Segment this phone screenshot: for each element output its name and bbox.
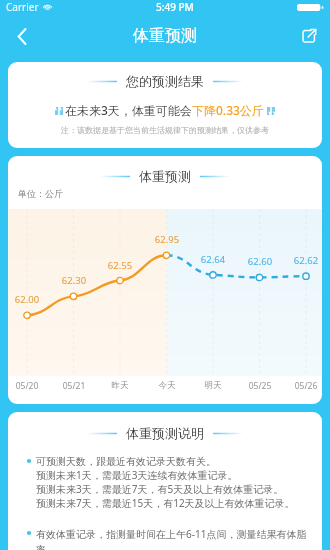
staticText: 62.62 xyxy=(292,254,320,267)
staticText: 体重预测 xyxy=(139,168,191,184)
staticText: 5:49 PM xyxy=(156,0,194,14)
staticText: 预测未来3天，需最近7天，有5天及以上有效体重记录。 xyxy=(36,482,284,496)
staticText: 体重预测说明 xyxy=(126,425,204,441)
staticText: 体重预测 xyxy=(0,26,330,46)
staticText: 明天 xyxy=(197,380,229,391)
staticText: 昨天 xyxy=(104,380,136,391)
staticText: 05/25 xyxy=(244,380,276,392)
staticText: 62.60 xyxy=(246,255,274,268)
button[interactable]: Share xyxy=(293,20,325,52)
staticText: 您的预测结果 xyxy=(126,73,204,89)
staticText: 可预测天数，跟最近有效记录天数有关。 xyxy=(36,455,216,468)
staticText: 在未来3天，体重可能会 xyxy=(65,102,192,118)
staticText: 注：该数据是基于您当前生活规律下的预测结果，仅供参考 xyxy=(8,125,322,135)
button[interactable]: Back xyxy=(6,20,38,52)
staticText: 62.95 xyxy=(153,233,181,246)
staticText: 有效体重记录，指测量时间在上午6-11点间，测量结果有体脂率。 xyxy=(36,527,319,550)
staticText: 今天 xyxy=(151,380,183,391)
staticText: 05/20 xyxy=(11,380,43,392)
staticText: 05/21 xyxy=(58,380,90,392)
staticText: 预测未来7天，需最近15天，有12天及以上有效体重记录。 xyxy=(36,496,295,510)
staticText: 预测未来1天，需最近3天连续有效体重记录。 xyxy=(36,468,238,482)
staticText: 62.55 xyxy=(106,259,134,272)
staticText: Carrier xyxy=(6,0,39,14)
staticText: 下降0.33公斤 xyxy=(192,102,264,118)
staticText: 05/26 xyxy=(290,380,322,392)
staticText: 62.64 xyxy=(199,253,227,266)
staticText: 单位：公斤 xyxy=(18,188,63,199)
staticText: 62.30 xyxy=(60,274,88,287)
staticText: 62.00 xyxy=(13,293,41,306)
